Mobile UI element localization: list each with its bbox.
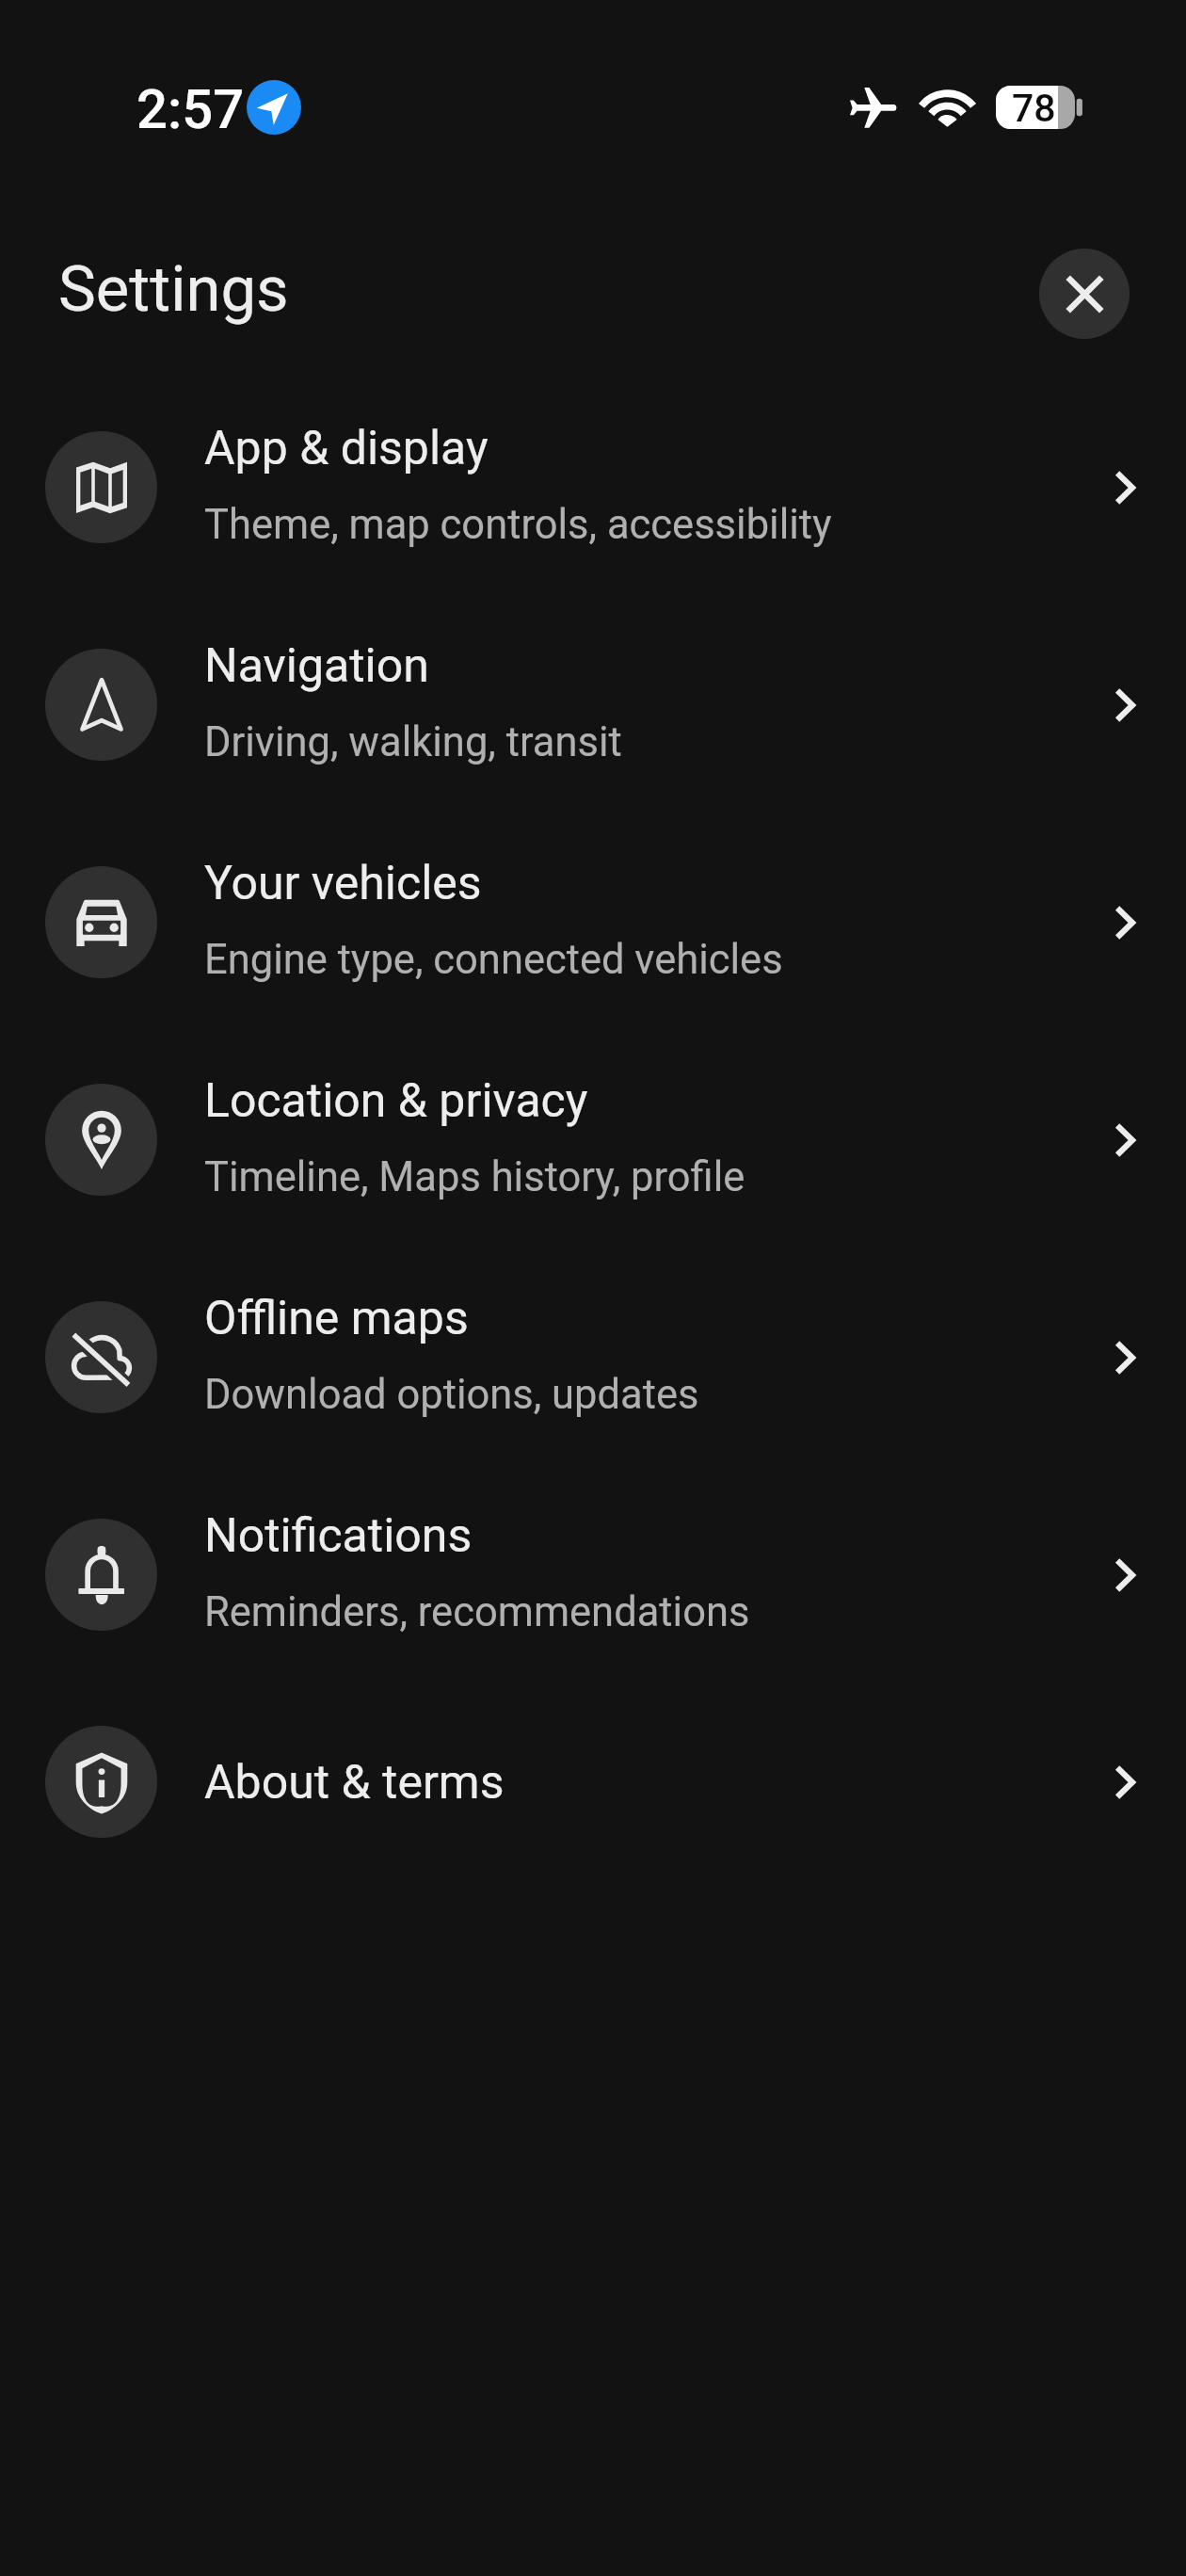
staticText: Reminders, recommendations [204,1588,750,1636]
staticText: Location & privacy [204,1073,588,1129]
button[interactable]: Notifications [0,1466,1186,1683]
staticText: Navigation [204,638,429,694]
button[interactable]: Your vehicles [0,813,1186,1031]
staticText: 2:57 [136,77,245,141]
staticText: Notifications [204,1508,473,1564]
staticText: Download options, updates [204,1371,699,1419]
staticText: 78 [1012,86,1056,129]
staticText: Your vehicles [204,856,482,911]
button[interactable]: Location & privacy [0,1031,1186,1248]
staticText: Settings [58,252,289,327]
button[interactable]: Navigation [0,596,1186,813]
button[interactable]: Offline maps [0,1248,1186,1466]
staticText: About & terms [204,1755,505,1811]
staticText: Timeline, Maps history, profile [204,1153,745,1201]
staticText: App & display [204,421,489,476]
button[interactable]: App & display [0,378,1186,596]
staticText: Offline maps [204,1291,469,1346]
staticText: Engine type, connected vehicles [204,936,783,984]
staticText: Driving, walking, transit [204,718,622,766]
staticText: Theme, map controls, accessibility [204,501,832,549]
button[interactable]: Close [1039,249,1130,339]
button[interactable]: About & terms [0,1683,1186,1880]
